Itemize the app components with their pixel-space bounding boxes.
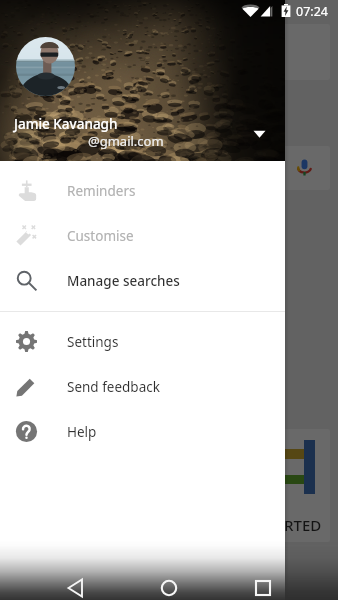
button[interactable]: Back: [56, 568, 96, 600]
button[interactable]: Manage searches: [0, 258, 285, 303]
button[interactable]: Recent apps: [243, 568, 283, 600]
button[interactable]: Reminders: [0, 168, 285, 213]
staticText: Help: [67, 423, 97, 441]
staticText: 07:24: [296, 3, 328, 20]
staticText: Customise: [67, 227, 134, 245]
button[interactable]: Help: [0, 409, 285, 454]
staticText: Manage searches: [67, 272, 180, 290]
staticText: Send feedback: [67, 378, 160, 396]
button[interactable]: Home: [149, 568, 189, 600]
staticText: Settings: [67, 333, 119, 351]
staticText: Reminders: [67, 182, 136, 200]
button[interactable]: Settings: [0, 319, 285, 364]
button[interactable]: Expand account list: [240, 116, 279, 155]
staticText: @gmail.com: [88, 132, 164, 150]
staticText: GET STARTED: [227, 515, 322, 535]
button[interactable]: Customise: [0, 213, 285, 258]
staticText: Jamie Kavanagh: [14, 115, 118, 133]
button[interactable]: Send feedback: [0, 364, 285, 409]
